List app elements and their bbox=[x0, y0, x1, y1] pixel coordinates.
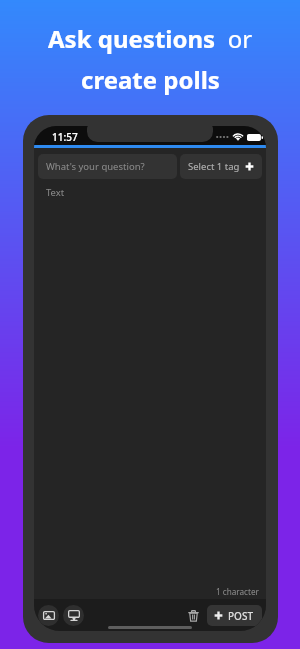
button[interactable]: Select 1 tag bbox=[180, 154, 262, 179]
staticText: 1 character bbox=[34, 586, 259, 597]
staticText: Text bbox=[46, 186, 65, 199]
staticText: POST bbox=[228, 609, 254, 623]
staticText: What's your question? bbox=[46, 160, 145, 173]
button[interactable]: Add image bbox=[38, 605, 59, 626]
staticText: Select 1 tag bbox=[188, 160, 240, 173]
button[interactable]: Delete bbox=[183, 606, 203, 626]
staticText: Ask questions or bbox=[48, 22, 253, 55]
staticText: 11:57 bbox=[52, 130, 78, 144]
staticText: create polls bbox=[81, 63, 220, 96]
button[interactable]: POST bbox=[207, 605, 262, 626]
button[interactable]: What's your question? bbox=[38, 154, 177, 179]
button[interactable]: Screen share bbox=[63, 605, 84, 626]
